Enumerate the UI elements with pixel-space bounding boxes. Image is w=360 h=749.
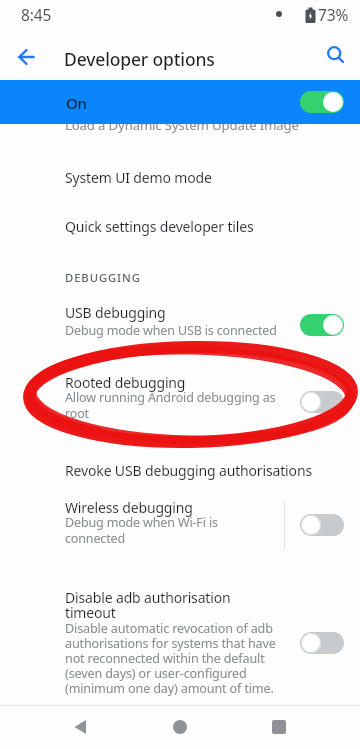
staticText: 73% (318, 4, 349, 25)
staticText: 8:45 (21, 4, 52, 25)
button[interactable] (158, 705, 202, 749)
staticText: Wireless debugging (65, 498, 193, 517)
button[interactable] (300, 314, 344, 336)
button[interactable] (300, 632, 344, 654)
button[interactable]: Rooted debugging (0, 362, 360, 434)
button[interactable] (300, 391, 344, 413)
button[interactable] (300, 514, 344, 536)
button[interactable] (58, 705, 102, 749)
staticText: USB debugging (65, 303, 166, 322)
button[interactable]: Load a Dynamic System Update Image (0, 108, 360, 140)
staticText: Disable automatic revocation of adb auth… (65, 620, 276, 697)
staticText: Rooted debugging (65, 373, 186, 392)
staticText: Debug mode when Wi-Fi is connected (65, 514, 218, 546)
staticText: Quick settings developer tiles (65, 217, 254, 236)
staticText: Revoke USB debugging authorisations (65, 461, 312, 480)
staticText: Debug mode when USB is connected (65, 322, 277, 339)
staticText: On (66, 93, 87, 113)
button[interactable] (257, 705, 301, 749)
button[interactable]: Revoke USB debugging authorisations (0, 450, 360, 496)
button[interactable]: Wireless debugging (0, 488, 360, 564)
staticText: Developer options (64, 47, 215, 71)
button[interactable] (4, 35, 48, 79)
button[interactable]: Disable adb authorisation timeout (0, 578, 360, 705)
staticText: Disable adb authorisation timeout (65, 588, 231, 622)
button[interactable] (314, 33, 358, 77)
button[interactable]: System UI demo mode (0, 152, 360, 196)
staticText: Allow running Android debugging as root (65, 389, 276, 421)
staticText: DEBUGGING (65, 270, 141, 285)
button[interactable]: USB debugging (0, 292, 360, 348)
button[interactable]: On (0, 80, 360, 124)
staticText: System UI demo mode (65, 168, 212, 187)
button[interactable]: Quick settings developer tiles (0, 200, 360, 246)
staticText: Load a Dynamic System Update Image (65, 116, 299, 134)
